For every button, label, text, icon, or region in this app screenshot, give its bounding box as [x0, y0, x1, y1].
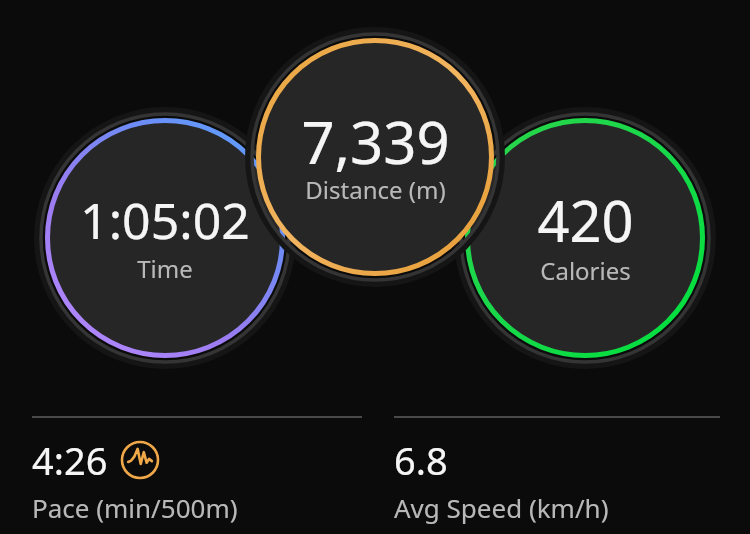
staticText: Pace (min/500m) — [32, 490, 238, 525]
button[interactable]: Distance 7,339 meters — [256, 38, 494, 276]
staticText: 420 — [537, 182, 634, 258]
button[interactable]: Time 1:05:02 — [45, 118, 285, 358]
staticText: Time — [137, 252, 193, 285]
staticText: Avg Speed (km/h) — [394, 490, 609, 525]
staticText: 1:05:02 — [80, 186, 250, 254]
button[interactable]: Pace 4:26 minutes per 500 meters — [32, 416, 362, 525]
button[interactable]: Calories 420 — [465, 118, 705, 358]
staticText: Calories — [540, 254, 631, 287]
staticText: 4:26 — [32, 434, 108, 486]
staticText: 6.8 — [394, 434, 448, 486]
staticText: 7,339 — [301, 102, 450, 181]
button[interactable]: Average speed 6.8 kilometers per hour — [394, 416, 720, 525]
staticText: Distance (m) — [305, 173, 446, 206]
